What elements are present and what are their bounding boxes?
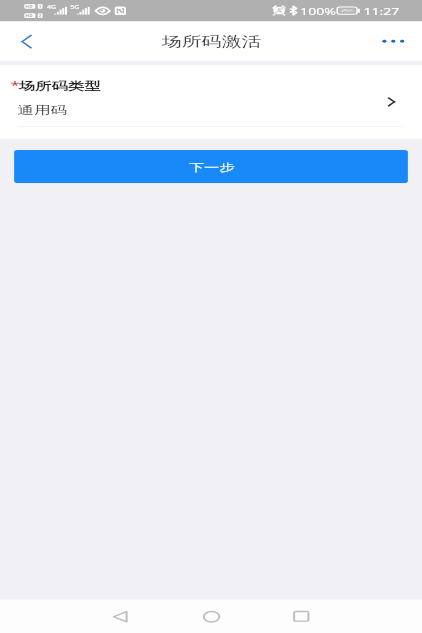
staticText: 5G: [70, 4, 80, 10]
staticText: 11:27: [363, 5, 400, 17]
button[interactable]: Home: [178, 600, 245, 633]
staticText: *: [11, 77, 20, 92]
staticText: 4G: [47, 4, 56, 10]
staticText: 通用码: [18, 104, 67, 118]
staticText: 下一步: [189, 160, 234, 173]
staticText: 场所码激活: [162, 33, 261, 50]
button[interactable]: Recent apps: [267, 600, 334, 633]
staticText: 场所码类型: [19, 79, 101, 94]
button[interactable]: Back: [2, 21, 49, 61]
button[interactable]: Back: [87, 600, 153, 633]
staticText: 100%: [300, 5, 336, 17]
button[interactable]: *: [0, 65, 422, 139]
button[interactable]: 下一步: [14, 150, 408, 183]
button[interactable]: More options: [368, 21, 420, 61]
